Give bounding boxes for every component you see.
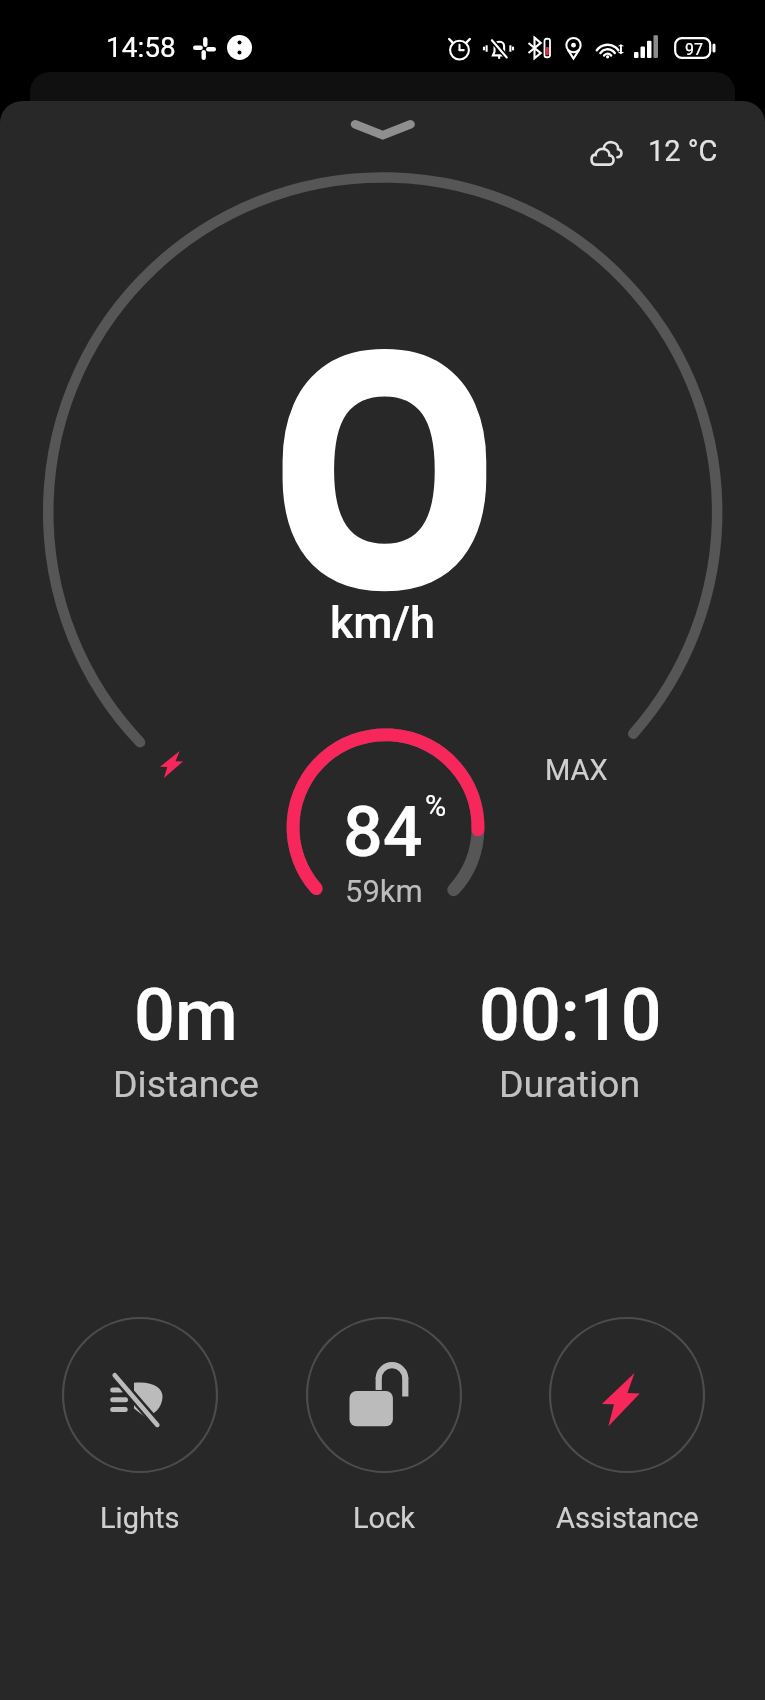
button[interactable]: Lights [45,1317,235,1535]
button[interactable]: 00:10 [410,973,730,1106]
staticText: Lock [353,1501,416,1535]
staticText: 97 [685,40,703,59]
button[interactable]: 0m [26,973,346,1106]
button[interactable]: Lock [289,1317,479,1535]
button[interactable]: Collapse [332,107,434,159]
staticText: 12 °C [648,134,718,168]
button[interactable]: Assistance [532,1317,722,1535]
staticText: Lights [100,1501,180,1535]
staticText: MAX [545,753,608,787]
staticText: Duration [499,1062,641,1106]
staticText: 00:10 [479,973,662,1057]
staticText: 0 [2,280,765,676]
staticText: % [425,789,447,823]
staticText: 14:58 [106,31,176,64]
staticText: km/h [0,596,765,649]
staticText: Assistance [556,1501,699,1535]
staticText: 59km [345,873,423,909]
staticText: 84 [343,791,423,873]
staticText: 0m [134,973,238,1057]
button[interactable]: Weather 12 degrees [590,134,718,168]
staticText: Distance [113,1062,259,1106]
